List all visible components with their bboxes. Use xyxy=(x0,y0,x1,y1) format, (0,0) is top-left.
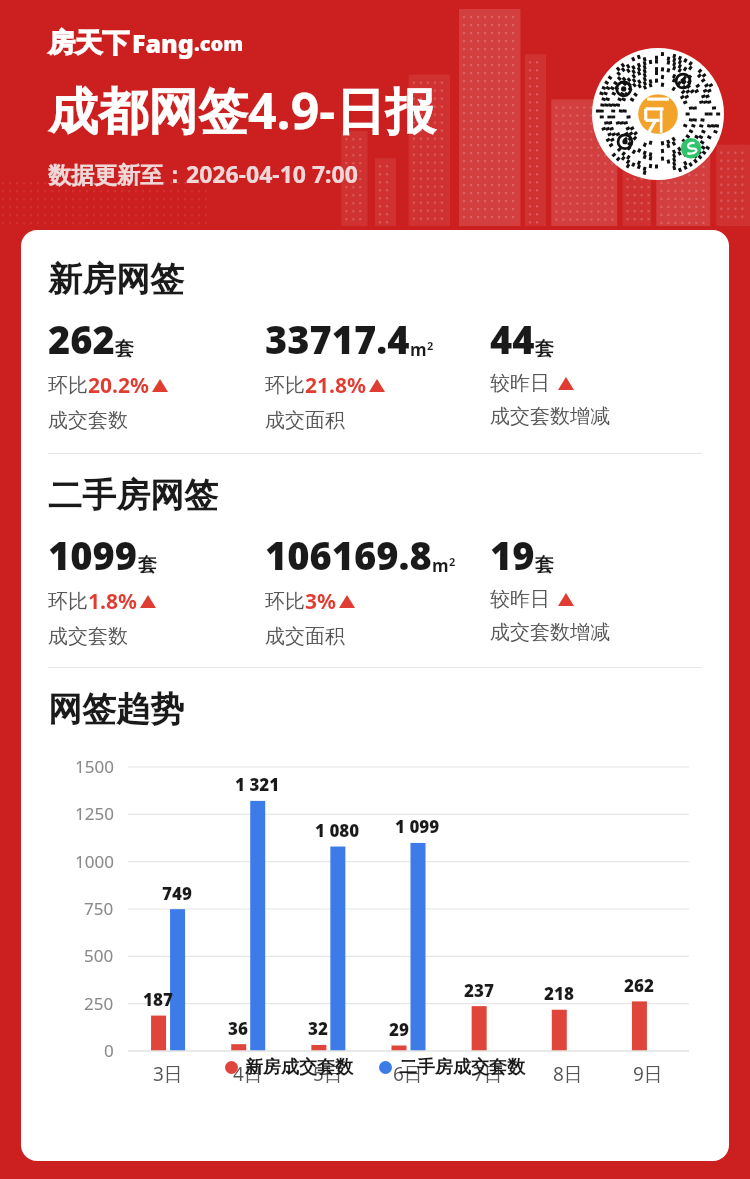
staticText: 106169.8 xyxy=(265,529,432,581)
staticText: 8日 xyxy=(553,1061,583,1087)
staticText: 262 xyxy=(48,313,115,365)
staticText: 新房成交套数 xyxy=(245,1056,353,1079)
staticText: 套 xyxy=(535,337,554,361)
staticText: Fang xyxy=(132,26,194,60)
staticText: 环比 xyxy=(48,589,88,614)
staticText: 32 xyxy=(308,1017,328,1040)
staticText: 6日 xyxy=(393,1061,423,1087)
button[interactable]: 33717.4 xyxy=(265,313,490,433)
staticText: 187 xyxy=(143,988,173,1011)
staticText: 1500 xyxy=(75,755,114,778)
staticText: 218 xyxy=(544,982,574,1005)
staticText: 成交面积 xyxy=(265,624,345,649)
staticText: 0 xyxy=(104,1039,114,1062)
staticText: 套 xyxy=(115,337,134,361)
button[interactable]: 扫码关注房天下小程序 xyxy=(592,48,724,180)
staticText: 较昨日 xyxy=(490,371,550,396)
staticText: 成交面积 xyxy=(265,408,345,433)
staticText: 房天下 xyxy=(48,26,129,60)
staticText: 44 xyxy=(490,313,535,365)
button[interactable]: 新房成交套数 xyxy=(225,1056,353,1079)
staticText: 5日 xyxy=(313,1061,343,1087)
staticText: 3日 xyxy=(153,1061,183,1087)
staticText: 网签趋势 xyxy=(48,688,184,731)
button[interactable]: 19 xyxy=(490,529,702,645)
staticText: 1 099 xyxy=(395,815,440,838)
staticText: 21.8% xyxy=(305,371,366,400)
staticText: 4日 xyxy=(233,1061,263,1087)
button[interactable]: 262 xyxy=(48,313,265,433)
staticText: m xyxy=(432,554,449,577)
staticText: 成交套数 xyxy=(48,624,128,649)
staticText: 1.8% xyxy=(88,587,137,616)
staticText: 二手房成交套数 xyxy=(399,1056,525,1079)
staticText: 250 xyxy=(84,992,114,1015)
staticText: 1250 xyxy=(75,802,114,825)
button[interactable]: 二手房成交套数 xyxy=(379,1056,525,1079)
staticText: 套 xyxy=(138,553,157,577)
staticText: 2 xyxy=(427,338,434,353)
staticText: 环比 xyxy=(265,589,305,614)
staticText: 7日 xyxy=(473,1061,503,1087)
button[interactable]: 44 xyxy=(490,313,702,429)
staticText: 1000 xyxy=(75,850,114,873)
staticText: 数据更新至：2026-04-10 7:00 xyxy=(48,158,358,189)
staticText: 1 080 xyxy=(315,819,360,842)
staticText: 19 xyxy=(490,529,535,581)
staticText: 2 xyxy=(449,554,456,569)
staticText: 成交套数 xyxy=(48,408,128,433)
staticText: m xyxy=(410,338,427,361)
button[interactable]: 房天下 xyxy=(48,26,244,60)
staticText: 750 xyxy=(84,897,114,920)
staticText: 环比 xyxy=(48,373,88,398)
button[interactable]: 106169.8 xyxy=(265,529,490,649)
staticText: 较昨日 xyxy=(490,587,550,612)
staticText: 新房网签 xyxy=(48,258,184,301)
staticText: 749 xyxy=(162,882,192,905)
staticText: 9日 xyxy=(633,1061,663,1087)
staticText: 环比 xyxy=(265,373,305,398)
staticText: 套 xyxy=(535,553,554,577)
staticText: 29 xyxy=(389,1018,409,1041)
staticText: .com xyxy=(194,30,244,57)
button[interactable]: 1099 xyxy=(48,529,265,649)
staticText: 500 xyxy=(84,944,114,967)
staticText: 1 321 xyxy=(235,773,280,796)
staticText: 20.2% xyxy=(88,371,149,400)
staticText: 33717.4 xyxy=(265,313,410,365)
staticText: 237 xyxy=(464,979,494,1002)
staticText: 3% xyxy=(305,587,336,616)
staticText: 成都网签4.9-日报 xyxy=(48,76,436,144)
staticText: 262 xyxy=(624,974,654,997)
staticText: 1099 xyxy=(48,529,138,581)
staticText: 二手房网签 xyxy=(48,474,218,517)
staticText: 成交套数增减 xyxy=(490,620,610,645)
staticText: 36 xyxy=(228,1017,248,1040)
staticText: 成交套数增减 xyxy=(490,404,610,429)
